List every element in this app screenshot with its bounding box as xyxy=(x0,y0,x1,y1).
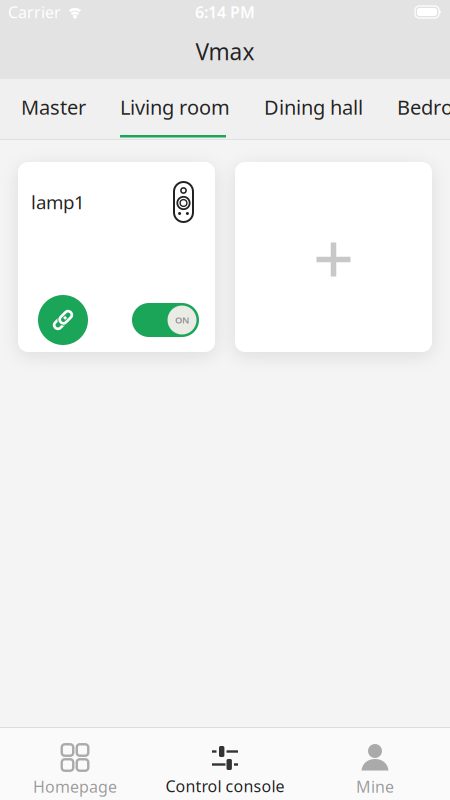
button[interactable]: Link device xyxy=(38,295,88,345)
button[interactable]: Dining hall xyxy=(264,94,363,120)
staticText: Carrier xyxy=(8,1,61,23)
button[interactable]: Living room xyxy=(120,94,230,120)
button[interactable]: Power on xyxy=(132,303,199,337)
staticText: Mine xyxy=(356,776,394,797)
staticText: Dining hall xyxy=(264,94,363,120)
staticText: lamp1 xyxy=(31,190,85,214)
staticText: Living room xyxy=(120,94,230,120)
button[interactable]: Mine xyxy=(300,744,450,797)
staticText: Control console xyxy=(165,775,284,797)
button[interactable]: Bedroom xyxy=(397,94,450,120)
staticText: Master xyxy=(21,94,86,120)
staticText: ON xyxy=(175,314,189,326)
staticText: Homepage xyxy=(33,776,117,797)
button[interactable]: Control console xyxy=(150,744,300,797)
button[interactable]: Homepage xyxy=(0,744,150,797)
staticText: Vmax xyxy=(195,36,254,66)
staticText: 6:14 PM xyxy=(195,1,255,23)
button[interactable]: Master xyxy=(21,94,86,120)
staticText: Bedroom xyxy=(397,94,450,120)
button[interactable]: Add device xyxy=(235,162,432,352)
